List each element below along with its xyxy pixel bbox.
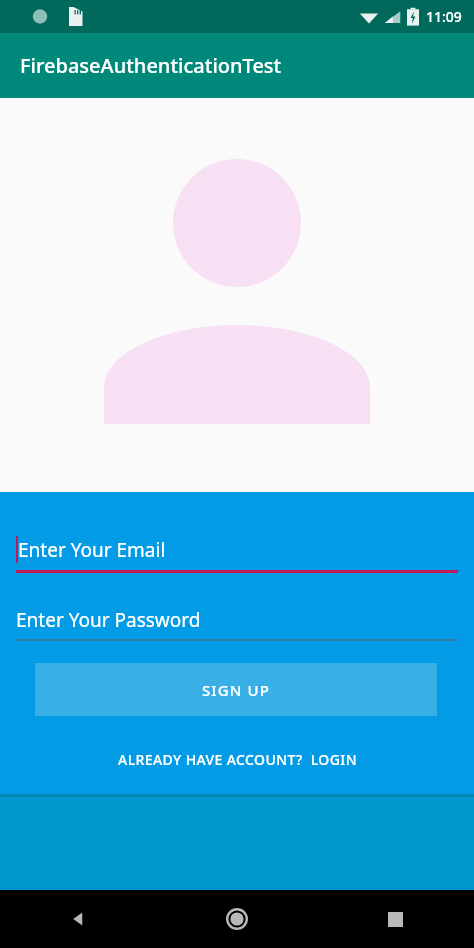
staticText: 11:09 bbox=[426, 7, 462, 26]
button[interactable]: ALREADY HAVE ACCOUNT? LOGIN bbox=[0, 744, 474, 774]
button[interactable]: Home bbox=[158, 890, 316, 948]
button[interactable]: Back bbox=[0, 890, 158, 948]
staticText: ALREADY HAVE ACCOUNT? LOGIN bbox=[118, 750, 357, 769]
button[interactable]: SIGN UP bbox=[35, 663, 437, 716]
staticText: Enter Your Password bbox=[16, 607, 201, 633]
staticText: Enter Your Email bbox=[18, 537, 166, 563]
button[interactable]: Enter Your Password bbox=[0, 598, 474, 641]
staticText: FirebaseAuthenticationTest bbox=[20, 52, 282, 79]
button[interactable]: Recent apps bbox=[316, 890, 474, 948]
staticText: SIGN UP bbox=[202, 680, 270, 700]
button[interactable]: Enter Your Email bbox=[0, 525, 474, 573]
